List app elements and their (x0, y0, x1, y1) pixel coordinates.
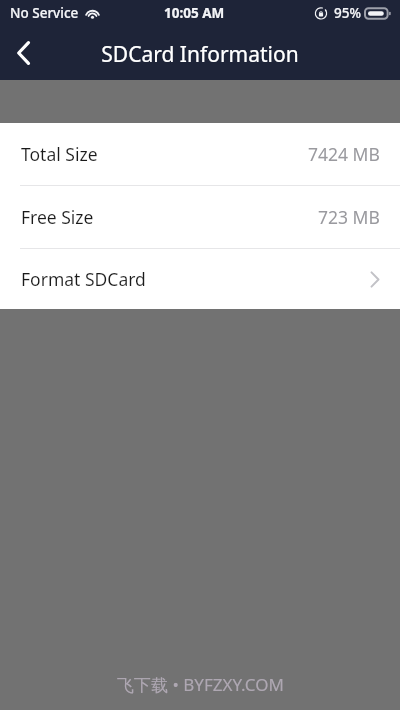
staticText: Format SDCard (21, 267, 146, 291)
staticText: 飞下载 • BYFZXY.COM (117, 673, 284, 696)
staticText: 10:05 AM (164, 4, 225, 22)
staticText: Total Size (21, 142, 98, 166)
button[interactable]: Free Size (0, 186, 400, 248)
button[interactable]: Back (0, 29, 48, 77)
staticText: 723 MB (318, 205, 380, 229)
staticText: 95% (334, 4, 361, 22)
button[interactable]: Total Size (0, 123, 400, 185)
staticText: Free Size (21, 205, 94, 229)
button[interactable]: Format SDCard (0, 249, 400, 309)
staticText: 7424 MB (308, 142, 380, 166)
staticText: SDCard Information (101, 40, 299, 69)
staticText: No Service (10, 4, 79, 22)
